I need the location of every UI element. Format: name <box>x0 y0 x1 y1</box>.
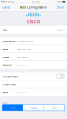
staticText: Off <box>11 106 14 109</box>
button[interactable]: Account <box>0 53 67 61</box>
staticText: Use Certificate <box>2 75 17 78</box>
staticText: Account <box>2 55 9 59</box>
staticText: Add Configuration <box>20 6 47 9</box>
staticText: 100% <box>57 0 62 3</box>
button[interactable]: Off <box>2 104 23 111</box>
button[interactable]: Type <box>0 26 67 34</box>
staticText: Server <box>2 47 8 51</box>
staticText: ••••••••• <box>17 63 26 66</box>
button[interactable]: Use Certificate <box>56 74 65 79</box>
staticText: Password <box>2 63 11 66</box>
staticText: Manual <box>30 106 37 109</box>
staticText: Cancel <box>2 6 10 9</box>
staticText: Done <box>57 6 64 9</box>
staticText: Auto <box>52 106 56 109</box>
button[interactable]: Manual <box>23 104 44 111</box>
staticText: Private\MyIPSec <box>17 40 33 43</box>
staticText: cisco <box>27 17 40 25</box>
staticText: PROXY <box>2 101 8 104</box>
button[interactable]: Password <box>0 61 67 69</box>
button[interactable]: Description <box>0 37 67 45</box>
staticText: Carrier <box>7 0 14 3</box>
staticText: IPSec <box>57 28 62 31</box>
staticText: Description <box>2 40 14 43</box>
staticText: ••••••••• <box>17 91 26 94</box>
staticText: Type <box>2 28 6 31</box>
staticText: Secret <box>2 91 8 94</box>
staticText: Group Name <box>2 83 15 86</box>
button[interactable]: Auto <box>44 104 65 111</box>
button[interactable]: Cancel <box>0 4 12 11</box>
staticText: 9:41 AM <box>32 0 40 3</box>
button[interactable]: Done <box>54 4 67 11</box>
button[interactable]: Server <box>0 45 67 53</box>
staticText: user.name <box>17 55 27 59</box>
staticText: vpn.acme.com <box>17 47 31 51</box>
button[interactable]: Secret <box>0 88 67 96</box>
button[interactable]: Group Name <box>0 80 67 88</box>
